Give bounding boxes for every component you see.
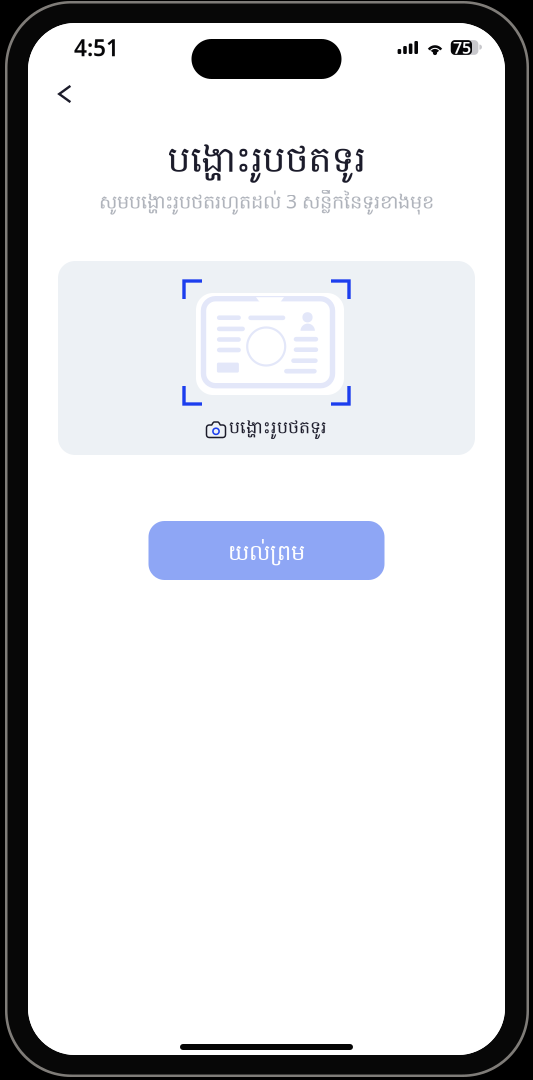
staticText: បង្ហោះរូបថតទូរ (167, 137, 365, 189)
staticText: បង្ហោះរូបថតទូរ (229, 416, 327, 442)
button[interactable]: យល់ព្រម (148, 521, 384, 580)
staticText: សូមបង្ហោះរូបថតរហូតដល់ 3 សន្លឹកនៃទូរខាងមុ… (99, 188, 434, 218)
staticText: យល់ព្រម (228, 538, 305, 571)
staticText: 4:51 (74, 32, 119, 62)
button[interactable]: Back (47, 76, 83, 112)
staticText: 75 (453, 37, 471, 58)
